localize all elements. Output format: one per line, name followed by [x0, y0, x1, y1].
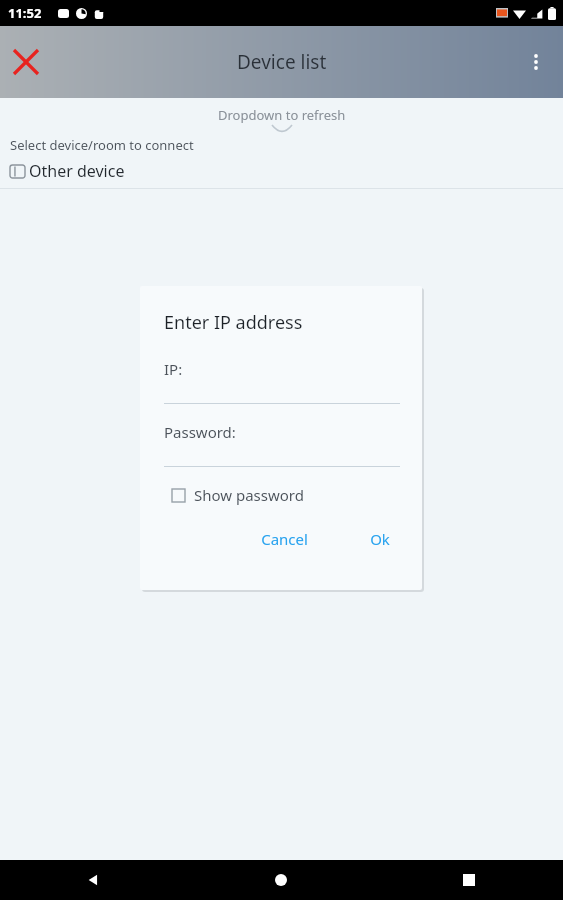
staticText: Dropdown to refresh	[218, 106, 346, 124]
staticText: 11:52	[8, 4, 42, 22]
staticText: Device list	[237, 49, 327, 75]
button[interactable]: Other device	[0, 154, 563, 188]
staticText: IP:	[164, 359, 183, 379]
button[interactable]: Cancel	[251, 523, 318, 555]
button[interactable]: Recent apps	[375, 860, 563, 900]
staticText: Cancel	[261, 529, 308, 549]
button[interactable]: More options	[515, 41, 557, 83]
button[interactable]: Home	[187, 860, 375, 900]
staticText: Show password	[194, 485, 304, 505]
staticText: Select device/room to connect	[10, 136, 194, 154]
button[interactable]: Back	[0, 860, 187, 900]
staticText: Ok	[370, 529, 390, 549]
button[interactable]: Ok	[360, 523, 400, 555]
staticText: Enter IP address	[164, 310, 303, 335]
staticText: Password:	[164, 422, 236, 442]
button[interactable]: Show password	[164, 481, 400, 509]
button[interactable]: Close	[4, 40, 48, 84]
staticText: Other device	[29, 160, 125, 182]
